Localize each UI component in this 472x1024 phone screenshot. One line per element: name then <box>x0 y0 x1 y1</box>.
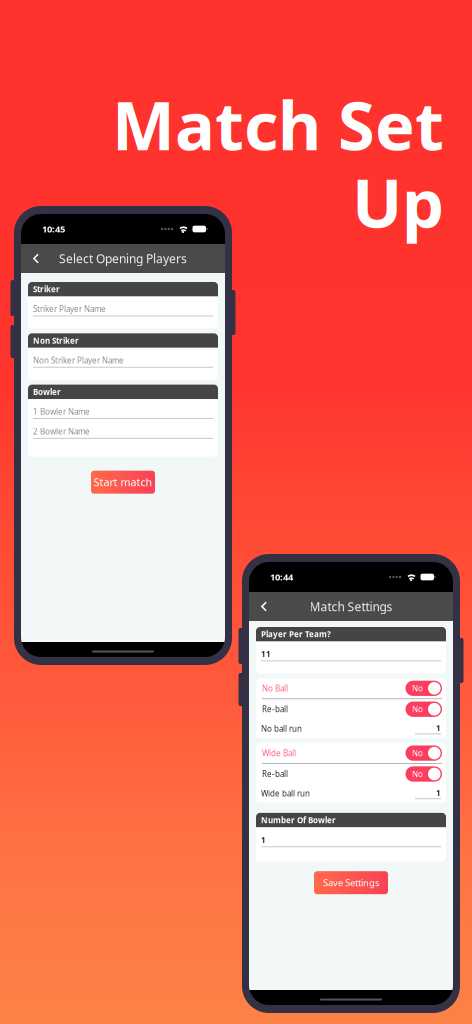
button[interactable]: 1 Bowler Name <box>28 399 218 419</box>
staticText: No Ball <box>262 683 288 694</box>
button[interactable]: Back <box>25 244 47 273</box>
button[interactable]: 1 <box>256 827 446 847</box>
staticText: Bowler <box>33 386 61 397</box>
button[interactable]: Start match <box>91 471 155 494</box>
staticText: 1 Bowler Name <box>33 406 90 417</box>
staticText: Striker Player Name <box>33 304 106 314</box>
staticText: Re-ball <box>262 769 288 779</box>
button[interactable]: 2 Bowler Name <box>28 419 218 439</box>
staticText: 1 <box>436 723 441 733</box>
staticText: Player Per Team? <box>261 629 331 639</box>
staticText: Match Settings <box>309 598 392 614</box>
staticText: Non Striker <box>33 335 79 346</box>
button[interactable]: Non Striker Player Name <box>28 348 218 368</box>
staticText: Non Striker Player Name <box>33 355 124 366</box>
staticText: Wide Ball <box>262 748 296 758</box>
staticText: Start match <box>93 475 152 489</box>
staticText: Striker <box>33 284 60 294</box>
staticText: 2 Bowler Name <box>33 426 90 437</box>
staticText: Up <box>352 157 444 246</box>
staticText: No <box>412 748 423 758</box>
staticText: Match Set <box>112 80 444 168</box>
staticText: No <box>412 704 423 714</box>
button[interactable]: Toggle No <box>405 681 442 696</box>
button[interactable]: Toggle No <box>405 701 442 717</box>
button[interactable]: Toggle No <box>405 766 442 782</box>
button[interactable]: 11 <box>256 641 446 661</box>
staticText: 10:45 <box>42 223 65 235</box>
button[interactable]: Toggle No <box>405 745 442 761</box>
staticText: No <box>412 683 423 694</box>
staticText: Save Settings <box>323 876 379 889</box>
staticText: 11 <box>261 649 271 659</box>
staticText: 1 <box>261 835 266 845</box>
staticText: 10:44 <box>270 571 293 583</box>
staticText: Re-ball <box>262 704 288 714</box>
staticText: Number Of Bowler <box>261 815 336 825</box>
staticText: No ball run <box>261 723 302 734</box>
staticText: No <box>412 769 423 779</box>
button[interactable]: Striker Player Name <box>28 296 218 316</box>
staticText: Wide ball run <box>261 788 310 799</box>
button[interactable]: Save Settings <box>314 871 388 894</box>
button[interactable]: Back <box>253 592 275 621</box>
staticText: Select Opening Players <box>59 250 187 266</box>
staticText: 1 <box>436 788 441 798</box>
